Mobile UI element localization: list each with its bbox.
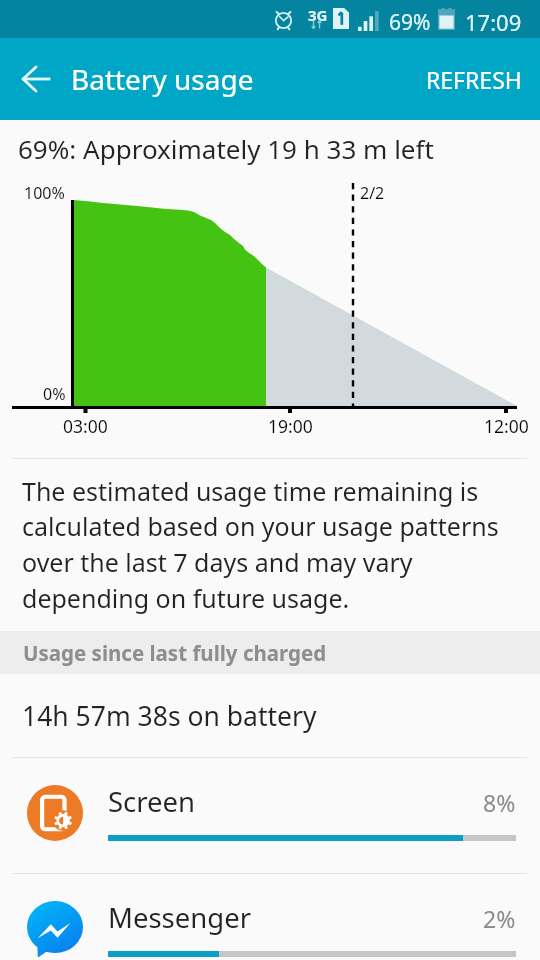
staticText: Screen xyxy=(108,783,196,820)
staticText: 2/2 xyxy=(360,182,385,204)
button[interactable]: 14h 57m 38s on battery xyxy=(0,674,540,757)
staticText: 2% xyxy=(483,903,516,934)
staticText: Battery usage xyxy=(71,60,254,98)
staticText: 69% xyxy=(389,8,431,37)
staticText: 17:09 xyxy=(465,7,522,37)
button[interactable]: Messenger xyxy=(0,873,540,960)
staticText: REFRESH xyxy=(426,64,522,95)
staticText: Messenger xyxy=(108,899,252,936)
staticText: 3G xyxy=(308,5,328,25)
staticText: 100% xyxy=(24,182,65,204)
staticText: 8% xyxy=(483,787,516,818)
button[interactable]: Screen xyxy=(0,757,540,873)
staticText: 14h 57m 38s on battery xyxy=(22,698,317,734)
button[interactable]: Back xyxy=(8,51,64,107)
staticText: Usage since last fully charged xyxy=(23,639,327,667)
staticText: 03:00 xyxy=(63,414,108,438)
button[interactable]: REFRESH xyxy=(408,48,540,111)
staticText: 19:00 xyxy=(268,414,313,438)
staticText: 0% xyxy=(43,383,66,405)
staticText: 12:00 xyxy=(484,414,529,438)
staticText: The estimated usage time remaining is ca… xyxy=(22,474,502,616)
staticText: 69%: Approximately 19 h 33 m left xyxy=(18,131,434,166)
